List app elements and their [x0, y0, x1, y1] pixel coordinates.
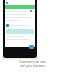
- staticText: Customers can now: [19, 60, 46, 64]
- button[interactable]: Add: [29, 45, 34, 49]
- staticText: test your business: [20, 64, 45, 68]
